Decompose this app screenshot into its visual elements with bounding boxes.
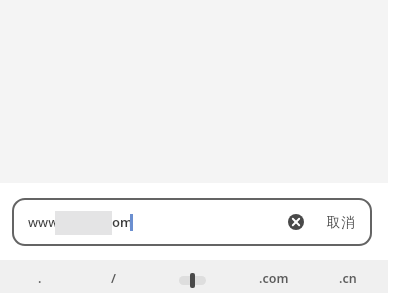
staticText: . bbox=[38, 270, 42, 287]
staticText: om bbox=[112, 213, 133, 231]
staticText: www bbox=[28, 214, 59, 231]
staticText: / bbox=[111, 270, 116, 287]
button[interactable]: .com bbox=[235, 260, 312, 293]
staticText: .cn bbox=[339, 270, 357, 287]
button[interactable]: . bbox=[2, 260, 77, 293]
button[interactable]: 取消 bbox=[322, 198, 360, 246]
button[interactable]: / bbox=[76, 260, 151, 293]
staticText: 取消 bbox=[327, 214, 356, 231]
staticText: .com bbox=[259, 270, 289, 287]
button[interactable]: www bbox=[12, 198, 372, 246]
button[interactable]: Clear text bbox=[284, 210, 308, 234]
button[interactable]: .cn bbox=[311, 260, 385, 293]
button[interactable]: Move cursor bbox=[152, 260, 232, 293]
